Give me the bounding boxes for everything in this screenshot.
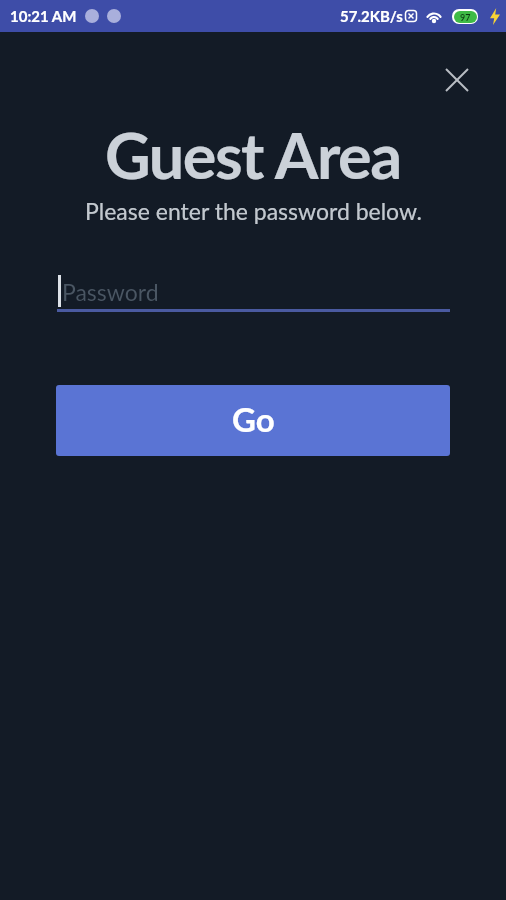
staticText: 97 [460, 12, 471, 23]
staticText: 10:21 AM [10, 7, 77, 25]
staticText: Please enter the password below. [85, 197, 422, 225]
button[interactable]: Password [57, 270, 450, 312]
button[interactable]: Go [56, 385, 450, 456]
staticText: Go [232, 399, 275, 439]
staticText: Guest Area [105, 117, 401, 193]
staticText: 57.2KB/s [340, 7, 403, 25]
staticText: Password [62, 278, 159, 306]
button[interactable] [446, 69, 468, 91]
